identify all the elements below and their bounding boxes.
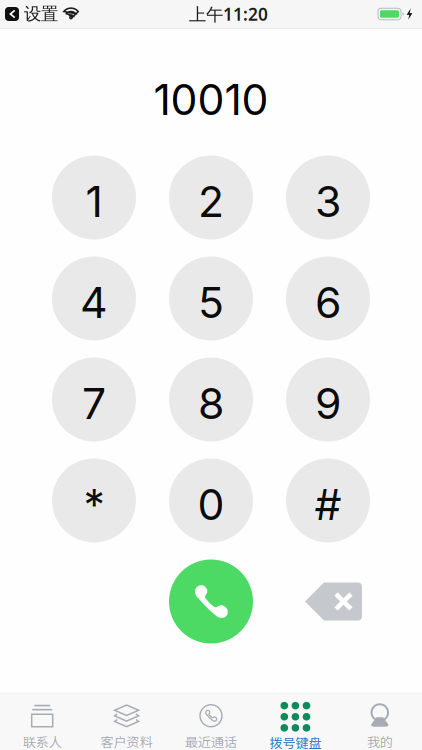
staticText: 6 xyxy=(315,277,341,328)
button[interactable]: 我的 xyxy=(338,695,422,750)
button[interactable]: 0 xyxy=(169,458,253,542)
button[interactable]: 8 xyxy=(169,357,253,441)
button[interactable]: 3 xyxy=(286,155,370,239)
button[interactable]: * xyxy=(52,458,136,542)
staticText: 8 xyxy=(198,378,224,429)
button[interactable]: 2 xyxy=(169,155,253,239)
staticText: 最近通话 xyxy=(185,732,237,750)
button[interactable]: 最近通话 xyxy=(169,695,253,750)
staticText: 10010 xyxy=(153,74,268,125)
button[interactable]: 9 xyxy=(286,357,370,441)
button[interactable]: 客户资料 xyxy=(84,695,169,750)
staticText: # xyxy=(314,479,341,530)
staticText: 5 xyxy=(198,277,224,328)
staticText: 4 xyxy=(80,277,108,328)
staticText: 上午11:20 xyxy=(189,2,268,25)
button[interactable]: 拨号键盘 xyxy=(253,694,338,750)
staticText: 客户资料 xyxy=(101,732,153,750)
staticText: * xyxy=(83,479,104,530)
button[interactable]: 联系人 xyxy=(0,695,84,750)
button[interactable]: Call xyxy=(169,559,253,643)
button[interactable]: 5 xyxy=(169,256,253,340)
staticText: 设置 xyxy=(24,3,58,25)
staticText: 我的 xyxy=(367,732,393,750)
staticText: 3 xyxy=(315,176,341,227)
staticText: 7 xyxy=(82,378,106,429)
button[interactable]: # xyxy=(286,458,370,542)
staticText: 9 xyxy=(315,378,341,429)
button[interactable]: Delete xyxy=(286,559,370,643)
staticText: 1 xyxy=(85,176,102,227)
staticText: 拨号键盘 xyxy=(269,733,321,750)
button[interactable]: 1 xyxy=(52,155,136,239)
button[interactable]: 4 xyxy=(52,256,136,340)
staticText: 0 xyxy=(197,479,224,530)
button[interactable]: 7 xyxy=(52,357,136,441)
staticText: 联系人 xyxy=(23,732,62,750)
button[interactable]: Back to Settings xyxy=(5,3,79,25)
button[interactable]: 6 xyxy=(286,256,370,340)
staticText: 2 xyxy=(198,176,224,227)
